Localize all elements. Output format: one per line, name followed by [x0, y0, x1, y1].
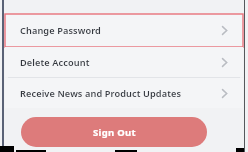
button[interactable]: Sign Out: [21, 117, 207, 147]
button[interactable]: Delete Account: [5, 47, 243, 77]
button[interactable]: Change Password: [5, 14, 243, 47]
staticText: Sign Out: [93, 126, 136, 139]
staticText: Delete Account: [20, 56, 90, 69]
staticText: Receive News and Product Updates: [20, 87, 182, 100]
staticText: Change Password: [20, 24, 101, 37]
button[interactable]: Receive News and Product Updates: [5, 78, 243, 108]
